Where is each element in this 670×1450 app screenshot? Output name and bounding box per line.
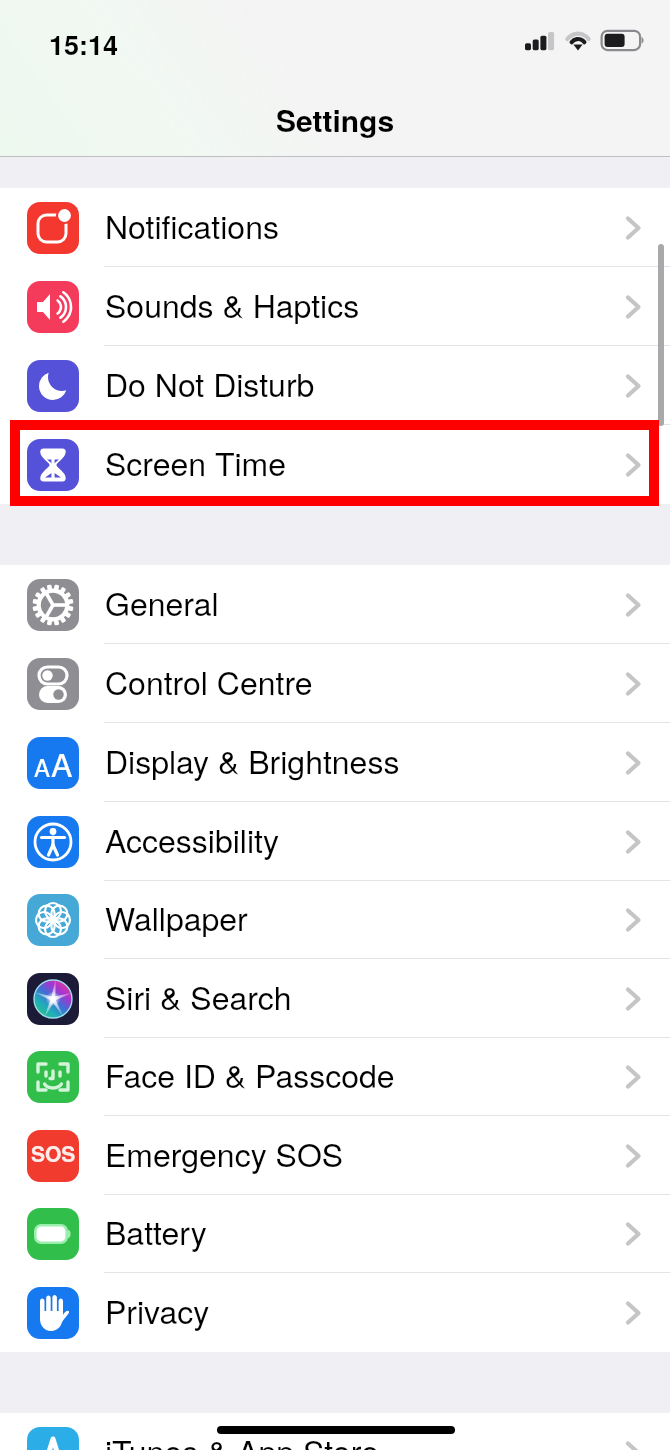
staticText: Battery: [105, 1208, 207, 1254]
staticText: Notifications: [105, 202, 279, 248]
staticText: Wallpaper: [105, 894, 248, 940]
staticText: Screen Time: [105, 439, 287, 485]
staticText: Emergency SOS: [105, 1130, 344, 1176]
button[interactable]: Accessibility: [0, 802, 670, 881]
staticText: Display & Brightness: [105, 737, 400, 783]
button[interactable]: Wallpaper: [0, 881, 670, 959]
staticText: SOS: [31, 1138, 76, 1168]
button[interactable]: Face ID & Passcode: [0, 1038, 670, 1116]
button[interactable]: Siri & Search: [0, 959, 670, 1038]
button[interactable]: Notifications: [0, 188, 670, 267]
button[interactable]: Do Not Disturb: [0, 346, 670, 425]
staticText: 15:14: [49, 25, 119, 64]
button[interactable]: Control Centre: [0, 644, 670, 723]
button[interactable]: SOS: [0, 1116, 670, 1195]
staticText: General: [105, 579, 219, 625]
staticText: Control Centre: [105, 658, 313, 704]
button[interactable]: General: [0, 565, 670, 644]
staticText: iTunes & App Store: [105, 1427, 379, 1450]
staticText: A: [34, 749, 51, 783]
button[interactable]: Battery: [0, 1195, 670, 1273]
staticText: Privacy: [105, 1287, 210, 1333]
staticText: Face ID & Passcode: [105, 1051, 395, 1097]
staticText: Siri & Search: [105, 973, 292, 1019]
staticText: Sounds & Haptics: [105, 281, 360, 327]
button[interactable]: A: [0, 723, 670, 802]
button[interactable]: Screen Time: [0, 425, 670, 504]
staticText: Settings: [0, 98, 670, 141]
staticText: A: [51, 740, 73, 786]
button[interactable]: Privacy: [0, 1273, 670, 1352]
staticText: Accessibility: [105, 816, 279, 862]
button[interactable]: Sounds & Haptics: [0, 267, 670, 346]
staticText: Do Not Disturb: [105, 360, 315, 406]
button[interactable]: iTunes & App Store: [0, 1413, 670, 1450]
